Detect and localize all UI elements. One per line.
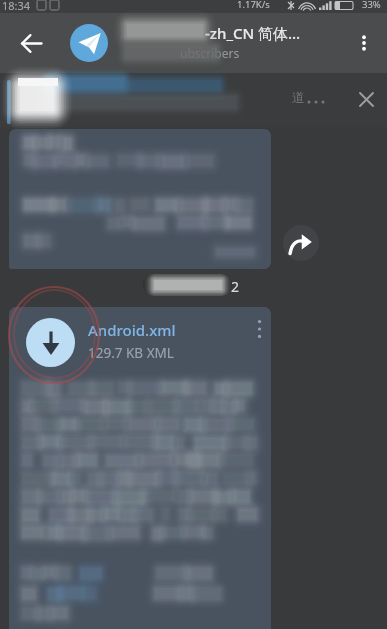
button[interactable] bbox=[143, 274, 232, 296]
button[interactable]: Download file bbox=[26, 318, 75, 367]
button[interactable]: Channel avatar bbox=[70, 24, 108, 62]
staticText: 33% bbox=[362, 0, 381, 11]
button[interactable] bbox=[9, 129, 271, 269]
button[interactable]: Download file bbox=[9, 307, 271, 629]
staticText: ubscribers bbox=[180, 45, 240, 61]
staticText: Android.xml bbox=[88, 320, 176, 340]
staticText: 1.17K/s bbox=[237, 0, 270, 11]
button[interactable]: Close pinned message bbox=[350, 83, 383, 116]
staticText: -zh_CN 简体... bbox=[205, 23, 301, 43]
staticText: 2 bbox=[231, 277, 240, 296]
staticText: 18:34 bbox=[2, 0, 31, 11]
button[interactable]: More options bbox=[346, 25, 382, 61]
staticText: 129.7 KB XML bbox=[88, 344, 174, 362]
staticText: 道 bbox=[292, 89, 305, 105]
button[interactable]: Share bbox=[283, 225, 319, 261]
button[interactable]: Back bbox=[11, 23, 51, 63]
